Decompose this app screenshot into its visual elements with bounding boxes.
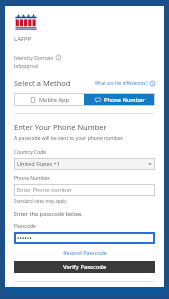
staticText: lafppprod [14, 62, 38, 69]
button[interactable]: Phone Number [84, 93, 155, 106]
staticText: Resend Passcode [63, 249, 107, 256]
staticText: A passcode will be sent to your phone nu… [14, 135, 124, 142]
button[interactable]: Resend Passcode [14, 249, 155, 256]
button[interactable]: Enter Phone number [14, 184, 155, 196]
staticText: Mobile App [39, 96, 69, 104]
staticText: Standard rates may apply. [14, 198, 68, 204]
button[interactable]: What are the differences? [95, 80, 155, 86]
staticText: Enter the passcode below. [14, 210, 83, 218]
staticText: Identity Domain [14, 54, 54, 61]
staticText: Passcode [14, 223, 36, 230]
staticText: What are the differences? [95, 80, 148, 86]
staticText: Country Code [14, 149, 47, 156]
staticText: Verify Passcode [63, 263, 107, 271]
button[interactable]: United States +1 [14, 158, 155, 170]
staticText: •••••• [17, 234, 32, 243]
staticText: LAFPP [14, 35, 32, 43]
button[interactable]: •••••• [14, 232, 155, 244]
staticText: Phone Number [14, 175, 50, 182]
staticText: Phone Number [104, 96, 145, 104]
staticText: Select a Method [14, 78, 71, 88]
staticText: Enter Phone number [17, 186, 72, 194]
staticText: Enter Your Phone Number [14, 122, 107, 132]
button[interactable]: Mobile App [14, 93, 84, 106]
button[interactable]: Verify Passcode [14, 261, 155, 273]
staticText: United States +1 [17, 160, 60, 168]
